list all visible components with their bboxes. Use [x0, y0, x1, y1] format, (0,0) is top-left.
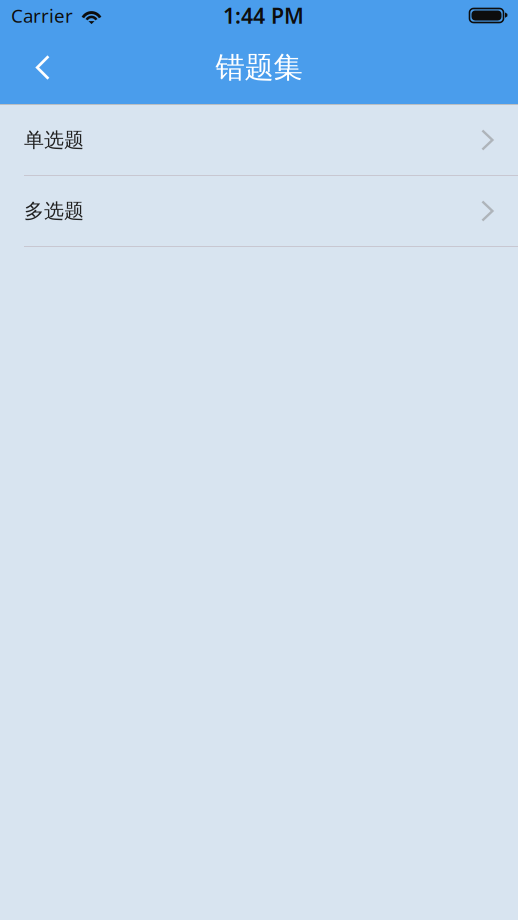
staticText: 多选题: [24, 199, 84, 223]
staticText: Carrier: [11, 3, 73, 28]
button[interactable]: 单选题: [0, 105, 518, 175]
staticText: 单选题: [24, 128, 84, 152]
staticText: 1:44 PM: [223, 1, 304, 30]
button[interactable]: 多选题: [0, 176, 518, 246]
button[interactable]: Back: [0, 38, 69, 96]
staticText: 错题集: [215, 49, 302, 85]
